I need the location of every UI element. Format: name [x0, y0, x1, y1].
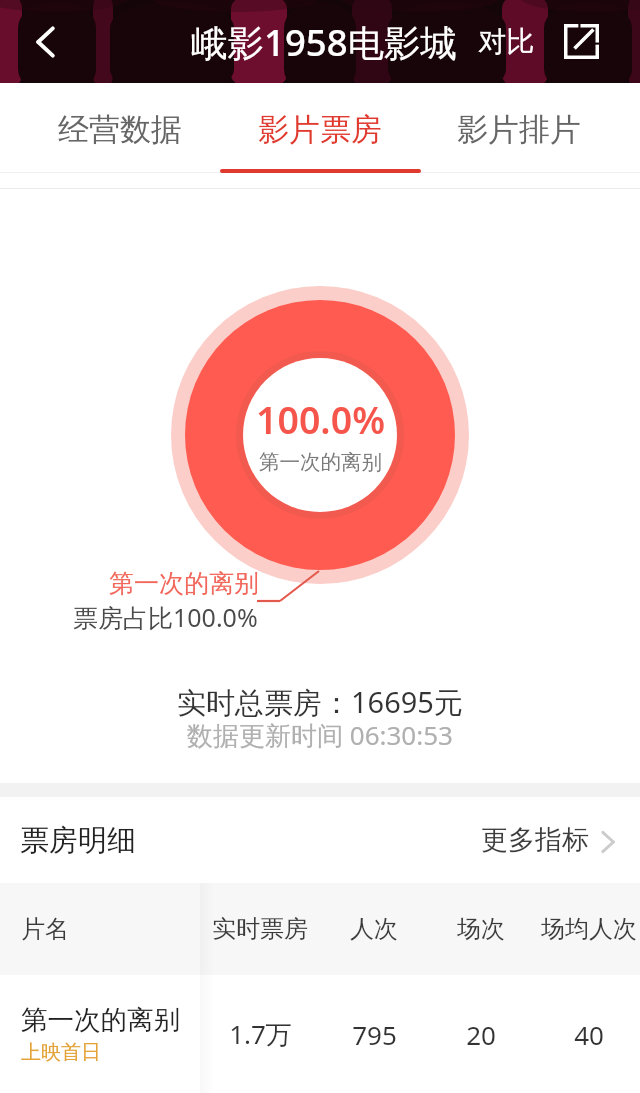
staticText: 更多指标 — [481, 823, 589, 857]
button[interactable]: 经营数据 — [40, 83, 200, 174]
staticText: 影片排片 — [457, 110, 581, 149]
staticText: 实时总票房：16695元 — [177, 682, 463, 722]
staticText: 峨影1958电影城 — [191, 17, 458, 67]
button[interactable]: 第一次的离别 — [0, 975, 640, 1093]
staticText: 经营数据 — [58, 110, 182, 149]
staticText: 人次 — [350, 914, 398, 944]
staticText: 票房明细 — [20, 822, 136, 859]
staticText: 票房占比100.0% — [73, 600, 258, 634]
staticText: 对比 — [478, 24, 534, 59]
staticText: 100.0% — [256, 394, 385, 445]
button[interactable]: 影片票房 — [240, 83, 400, 174]
staticText: 20 — [466, 1017, 496, 1052]
staticText: 1.7万 — [229, 1016, 292, 1052]
staticText: 40 — [574, 1017, 604, 1052]
staticText: 第一次的离别 — [21, 1003, 180, 1036]
staticText: 场均人次 — [541, 914, 637, 944]
staticText: 场次 — [457, 914, 505, 944]
staticText: 数据更新时间 06:30:53 — [187, 717, 453, 753]
staticText: 795 — [352, 1017, 397, 1052]
button[interactable]: Share — [553, 0, 609, 83]
button[interactable]: 对比 — [476, 0, 536, 83]
button[interactable]: 更多指标 — [481, 823, 620, 857]
staticText: 第一次的离别 — [109, 568, 259, 599]
staticText: 影片票房 — [258, 110, 382, 149]
staticText: 上映首日 — [21, 1040, 101, 1065]
staticText: 片名 — [21, 914, 69, 944]
button[interactable]: Back — [0, 0, 92, 83]
button[interactable]: 影片排片 — [439, 83, 599, 174]
staticText: 第一次的离别 — [259, 449, 382, 475]
staticText: 实时票房 — [212, 914, 308, 944]
